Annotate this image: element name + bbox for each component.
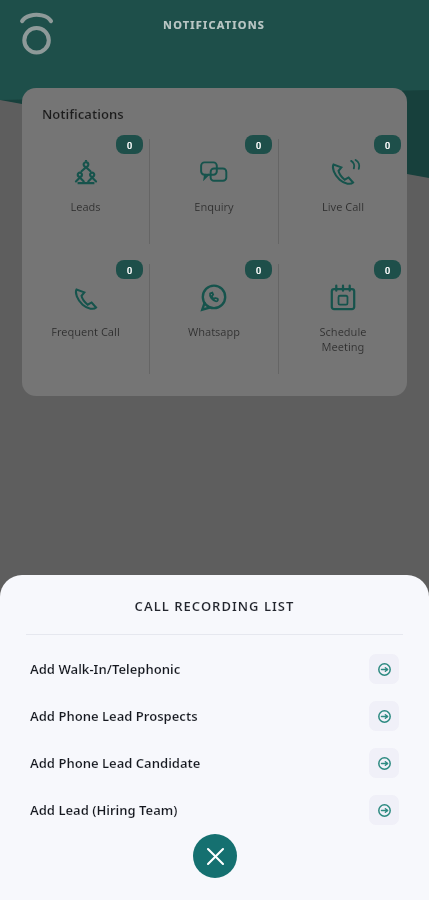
other: Add Walk-In/Telephonic (369, 654, 399, 684)
other: Add Phone Lead Prospects (369, 701, 399, 731)
staticText: Schedule Meeting (279, 324, 407, 354)
button[interactable]: Enquiry (150, 129, 278, 254)
staticText: NOTIFICATIONS (163, 17, 266, 32)
staticText: Add Phone Lead Prospects (30, 707, 369, 725)
staticText: Whatsapp (150, 324, 278, 339)
staticText: Notifications (42, 105, 124, 123)
other: Add Phone Lead Candidate (369, 748, 399, 778)
staticText: Add Lead (Hiring Team) (30, 801, 369, 819)
staticText: Add Phone Lead Candidate (30, 754, 369, 772)
other: Add Lead (Hiring Team) (369, 795, 399, 825)
staticText: Add Walk-In/Telephonic (30, 660, 369, 678)
staticText: CALL RECORDING LIST (0, 597, 429, 615)
button[interactable]: Live Call (279, 129, 407, 254)
staticText: 0 (385, 264, 391, 276)
button[interactable]: Whatsapp (150, 254, 278, 384)
staticText: 0 (256, 264, 262, 276)
staticText: 0 (385, 139, 391, 151)
button[interactable]: Add Phone Lead Candidate (0, 739, 429, 786)
button[interactable]: Frequent Call (22, 254, 149, 384)
button[interactable]: Add Phone Lead Prospects (0, 692, 429, 739)
staticText: Live Call (279, 199, 407, 214)
button[interactable]: Add Walk-In/Telephonic (0, 645, 429, 692)
staticText: 0 (127, 139, 133, 151)
button[interactable]: Close (193, 834, 237, 878)
staticText: Leads (22, 199, 149, 214)
button[interactable]: App logo (14, 10, 62, 58)
button[interactable]: Add Lead (Hiring Team) (0, 786, 429, 833)
button[interactable]: Schedule Meeting (279, 254, 407, 384)
staticText: Enquiry (150, 199, 278, 214)
button[interactable]: Leads (22, 129, 149, 254)
staticText: 0 (256, 139, 262, 151)
staticText: Frequent Call (22, 324, 149, 339)
staticText: 0 (127, 264, 133, 276)
